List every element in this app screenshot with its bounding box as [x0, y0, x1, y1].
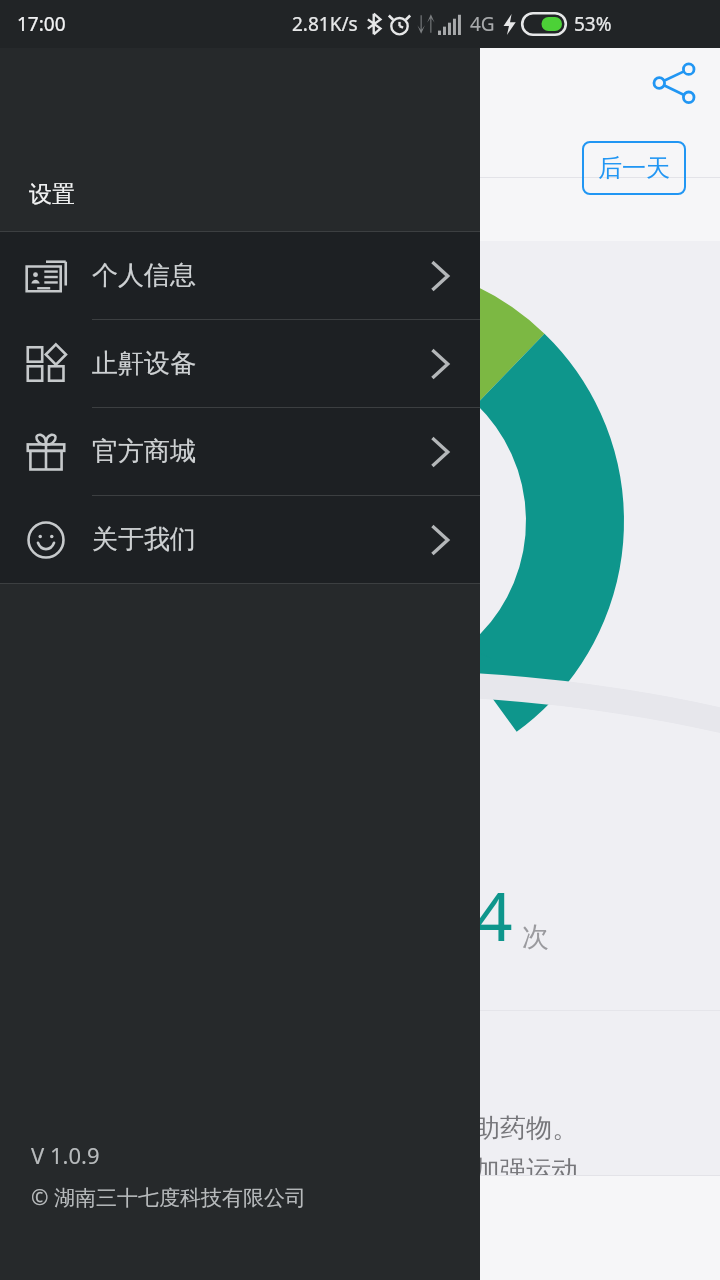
- staticText: 后一天: [598, 153, 670, 183]
- staticText: 个人信息: [92, 259, 196, 292]
- staticText: 关于我们: [92, 523, 196, 556]
- staticText: 官方商城: [92, 435, 196, 468]
- staticText: 17:00: [17, 11, 66, 37]
- staticText: 适当服用辅助药物。: [344, 1112, 578, 1145]
- button[interactable]: 关于我们: [0, 496, 480, 583]
- button[interactable]: 后一天: [582, 141, 686, 195]
- staticText: 4G: [470, 11, 495, 37]
- staticText: V 1.0.9: [31, 1140, 100, 1170]
- staticText: 止鼾设备: [92, 347, 196, 380]
- staticText: 设置: [29, 180, 75, 209]
- button[interactable]: Share: [641, 50, 707, 116]
- staticText: 次: [522, 920, 549, 954]
- button[interactable]: 官方商城: [0, 408, 480, 495]
- button[interactable]: 个人信息: [0, 232, 480, 319]
- staticText: 284: [396, 868, 513, 961]
- button[interactable]: 止鼾设备: [0, 320, 480, 407]
- staticText: © 湖南三十七度科技有限公司: [31, 1183, 306, 1212]
- staticText: 注意休息，加强运动。: [344, 1154, 604, 1187]
- staticText: 53%: [574, 11, 612, 37]
- staticText: 2.81K/s: [292, 11, 358, 37]
- button[interactable]: 监测报告: [335, 1175, 505, 1280]
